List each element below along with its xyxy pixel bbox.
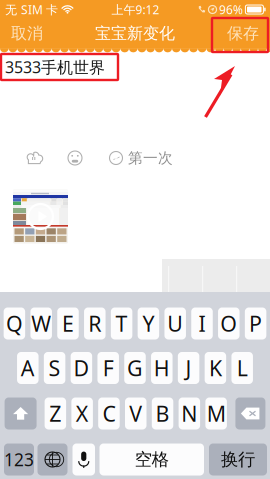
button[interactable]: P — [245, 307, 266, 339]
staticText: J — [186, 354, 192, 382]
staticText: A — [21, 354, 35, 382]
button[interactable]: Q — [4, 307, 25, 339]
button[interactable]: H — [151, 352, 173, 384]
staticText: 保存 — [227, 24, 259, 43]
button[interactable]: Delete — [235, 397, 265, 429]
staticText: 96% — [219, 1, 243, 17]
button[interactable]: R — [84, 307, 106, 339]
staticText: L — [237, 354, 248, 382]
button[interactable]: Stickers — [23, 148, 45, 168]
button[interactable]: J — [178, 352, 199, 384]
staticText: 无 SIM 卡 — [5, 1, 58, 17]
staticText: X — [76, 399, 89, 428]
button[interactable]: D — [71, 352, 92, 384]
staticText: H — [154, 354, 170, 382]
button[interactable]: 取消 — [5, 19, 49, 48]
staticText: M — [207, 399, 226, 428]
button[interactable]: K — [205, 352, 226, 384]
button[interactable]: T — [111, 307, 132, 339]
staticText: G — [127, 354, 143, 382]
button[interactable]: M — [205, 397, 227, 429]
staticText: Q — [6, 309, 23, 338]
staticText: R — [88, 309, 101, 338]
button[interactable]: Dictation — [72, 443, 95, 475]
staticText: N — [181, 399, 197, 428]
button[interactable]: Z — [45, 397, 66, 429]
button[interactable]: 123 — [4, 443, 34, 475]
button[interactable]: 第一次 — [109, 148, 173, 168]
button[interactable]: E — [57, 307, 79, 339]
staticText: V — [129, 399, 142, 428]
staticText: S — [49, 354, 61, 382]
button[interactable]: Shift — [5, 397, 37, 429]
staticText: Z — [49, 399, 61, 428]
staticText: T — [116, 309, 128, 338]
button[interactable]: Play video — [13, 189, 68, 243]
staticText: 123 — [4, 448, 34, 471]
staticText: W — [31, 309, 51, 338]
staticText: 取消 — [11, 24, 43, 43]
staticText: 换行 — [221, 449, 255, 470]
staticText: U — [167, 309, 183, 338]
staticText: 空格 — [135, 449, 169, 470]
staticText: B — [156, 399, 170, 428]
button[interactable]: F — [97, 352, 119, 384]
button[interactable]: 保存 — [221, 19, 265, 48]
staticText: Y — [142, 309, 154, 338]
button[interactable]: L — [231, 352, 253, 384]
staticText: E — [62, 309, 74, 338]
staticText: K — [209, 354, 222, 382]
button[interactable]: A — [17, 352, 38, 384]
staticText: 第一次 — [128, 149, 173, 167]
button[interactable]: S — [44, 352, 65, 384]
button[interactable]: G — [124, 352, 146, 384]
button[interactable]: U — [164, 307, 186, 339]
staticText: P — [249, 309, 262, 338]
button[interactable]: B — [152, 397, 173, 429]
button[interactable]: Y — [138, 307, 159, 339]
button[interactable]: N — [179, 397, 200, 429]
staticText: 宝宝新变化 — [95, 24, 175, 43]
staticText: C — [102, 399, 115, 428]
button[interactable]: C — [98, 397, 120, 429]
button[interactable]: V — [125, 397, 146, 429]
button[interactable]: I — [191, 307, 213, 339]
staticText: I — [198, 309, 205, 338]
button[interactable]: Emoji — [65, 148, 85, 168]
button[interactable]: 换行 — [209, 443, 267, 475]
staticText: 上午9:12 — [111, 1, 159, 17]
staticText: D — [73, 354, 89, 382]
staticText: F — [103, 354, 114, 382]
button[interactable]: Switch keyboard — [37, 443, 67, 475]
button[interactable]: W — [30, 307, 52, 339]
staticText: 3533手机世界 — [5, 56, 105, 78]
button[interactable]: X — [71, 397, 93, 429]
staticText: O — [220, 309, 237, 338]
button[interactable]: O — [218, 307, 240, 339]
button[interactable]: 空格 — [99, 443, 204, 475]
